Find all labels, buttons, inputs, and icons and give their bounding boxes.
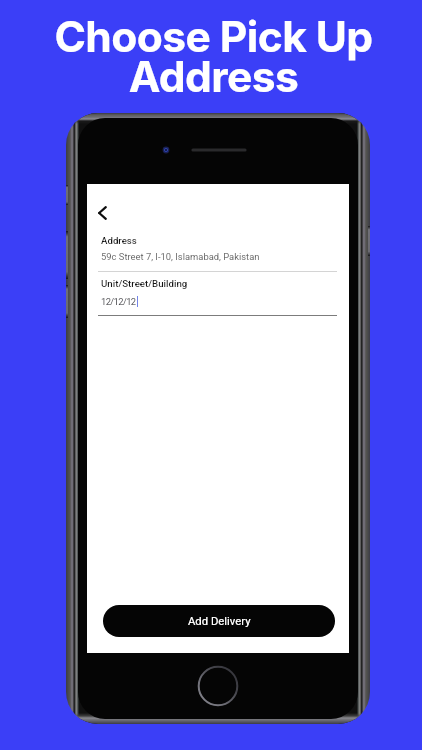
button[interactable]: Back <box>89 200 115 226</box>
button[interactable]: Add Delivery <box>103 605 335 637</box>
staticText: 59c Street 7, I-10, Islamabad, Pakistan <box>101 251 260 262</box>
staticText: Address <box>101 235 137 246</box>
staticText: Unit/Street/Building <box>101 278 188 289</box>
staticText: Choose Pick Up Address <box>54 11 373 103</box>
staticText: 12/12/12 <box>101 296 136 307</box>
staticText: Add Delivery <box>188 615 251 628</box>
